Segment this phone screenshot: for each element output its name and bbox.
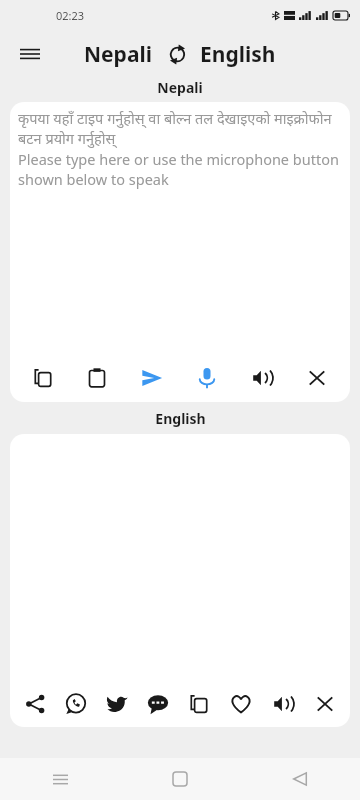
staticText: Please type here or use the microphone b…	[18, 149, 342, 189]
button[interactable]: Copy	[178, 681, 220, 727]
button[interactable]: Clear	[304, 681, 346, 727]
button[interactable]: SMS	[137, 681, 178, 727]
button[interactable]: कृपया यहाँ टाइप गर्नुहोस् वा बोल्न तल दे…	[18, 108, 342, 354]
staticText: 02:23	[56, 8, 85, 23]
staticText: Nepali	[157, 78, 203, 97]
button[interactable]: Back	[280, 759, 320, 799]
button[interactable]: Translate	[124, 354, 179, 402]
button[interactable]: Clear	[289, 354, 344, 402]
button[interactable]: Paste	[70, 354, 124, 402]
staticText: Nepali	[84, 40, 152, 69]
button[interactable]: Home	[160, 759, 200, 799]
staticText: English	[200, 40, 276, 69]
button[interactable]: WhatsApp	[55, 681, 96, 727]
button[interactable]: Favorite	[220, 681, 262, 727]
button[interactable]: Twitter	[96, 681, 137, 727]
button[interactable]: Microphone	[179, 354, 234, 402]
button[interactable]: Nepali	[84, 40, 152, 69]
button[interactable]: Swap languages	[162, 39, 192, 69]
button[interactable]: Speak	[262, 681, 304, 727]
button[interactable]: Share	[14, 681, 55, 727]
button[interactable]: Recents	[40, 759, 80, 799]
button[interactable]: Speak	[234, 354, 289, 402]
button[interactable]: Menu	[10, 34, 50, 74]
staticText: English	[155, 409, 206, 428]
button[interactable]: Copy	[16, 354, 70, 402]
button[interactable]: English	[200, 40, 276, 69]
staticText: कृपया यहाँ टाइप गर्नुहोस् वा बोल्न तल दे…	[18, 108, 342, 149]
